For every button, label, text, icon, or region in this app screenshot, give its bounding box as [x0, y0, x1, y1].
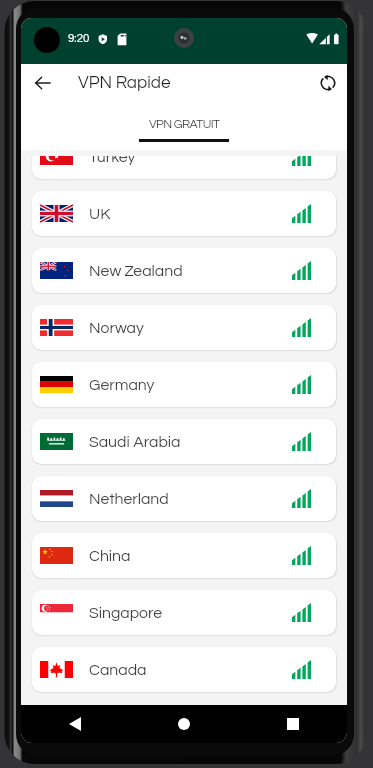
button[interactable]: New Zealand [32, 248, 336, 293]
button[interactable]: Singapore [32, 590, 336, 635]
button[interactable]: Home [129, 705, 238, 743]
staticText: Germany [89, 377, 155, 393]
staticText: Saudi Arabia [89, 434, 181, 450]
staticText: Singapore [89, 605, 163, 621]
button[interactable]: VPN GRATUIT [21, 102, 347, 150]
button[interactable]: Recent apps [238, 705, 347, 743]
staticText: Canada [89, 662, 147, 678]
button[interactable]: Turkey [32, 156, 336, 179]
staticText: New Zealand [89, 263, 183, 279]
button[interactable]: Canada [32, 647, 336, 692]
button[interactable]: Back [28, 68, 58, 98]
button[interactable]: UK [32, 191, 336, 236]
staticText: UK [89, 206, 111, 222]
button[interactable]: China [32, 533, 336, 578]
staticText: VPN GRATUIT [149, 118, 220, 131]
staticText: Netherland [89, 491, 169, 507]
button[interactable]: Refresh [313, 68, 343, 98]
button[interactable]: Netherland [32, 476, 336, 521]
button[interactable]: Germany [32, 362, 336, 407]
button[interactable]: Back [21, 705, 129, 743]
staticText: 9:20 [68, 33, 90, 45]
staticText: Norway [89, 320, 144, 336]
staticText: Turkey [89, 156, 136, 165]
button[interactable]: Norway [32, 305, 336, 350]
button[interactable]: Saudi Arabia [32, 419, 336, 464]
staticText: China [89, 548, 131, 564]
staticText: VPN Rapide [78, 74, 171, 92]
